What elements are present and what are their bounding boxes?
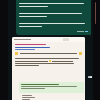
button[interactable]: [12, 37, 85, 100]
button[interactable]: Scroll to bottom: [88, 74, 92, 78]
button[interactable]: [16, 0, 91, 35]
